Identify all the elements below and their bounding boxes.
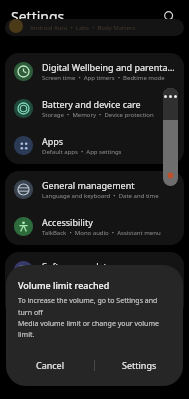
staticText: Storage • Memory • Device protection bbox=[42, 111, 154, 119]
staticText: Digital Wellbeing and parental controls bbox=[42, 61, 175, 73]
button[interactable]: More options bbox=[163, 88, 178, 120]
button[interactable]: User manual bbox=[5, 289, 184, 319]
staticText: Software update bbox=[42, 260, 112, 272]
button[interactable]: Software update bbox=[5, 252, 184, 289]
staticText: Cancel bbox=[36, 359, 65, 371]
button[interactable]: Apps bbox=[5, 127, 184, 164]
staticText: Battery and device care bbox=[42, 98, 141, 110]
button[interactable]: Search bbox=[159, 6, 179, 26]
staticText: Screen time • App timers • Bedtime mode bbox=[42, 74, 165, 82]
staticText: Language and keyboard • Date and time bbox=[42, 192, 159, 200]
button[interactable]: Accessibility bbox=[5, 208, 184, 245]
staticText: TalkBack • Mono audio • Assistant menu bbox=[42, 229, 161, 237]
button[interactable]: Android Auto • Labs • Body Matters bbox=[5, 19, 184, 36]
staticText: Android Auto • Labs • Body Matters bbox=[30, 24, 136, 32]
staticText: Volume limit reached bbox=[18, 279, 110, 291]
staticText: To increase the volume, go to Settings a… bbox=[18, 296, 171, 339]
staticText: User manual bbox=[42, 298, 96, 310]
button[interactable]: Battery and device care bbox=[5, 90, 184, 127]
staticText: Default apps • App settings bbox=[42, 148, 122, 156]
button[interactable]: General management bbox=[5, 171, 184, 208]
button[interactable]: Settings bbox=[95, 353, 183, 377]
staticText: General management bbox=[42, 179, 135, 191]
staticText: Settings bbox=[122, 359, 157, 371]
button[interactable]: Digital Wellbeing and parental controls bbox=[5, 53, 184, 90]
staticText: Accessibility bbox=[42, 216, 93, 228]
button[interactable]: Cancel bbox=[6, 353, 94, 377]
staticText: Settings bbox=[11, 7, 65, 26]
staticText: Apps bbox=[42, 135, 64, 147]
